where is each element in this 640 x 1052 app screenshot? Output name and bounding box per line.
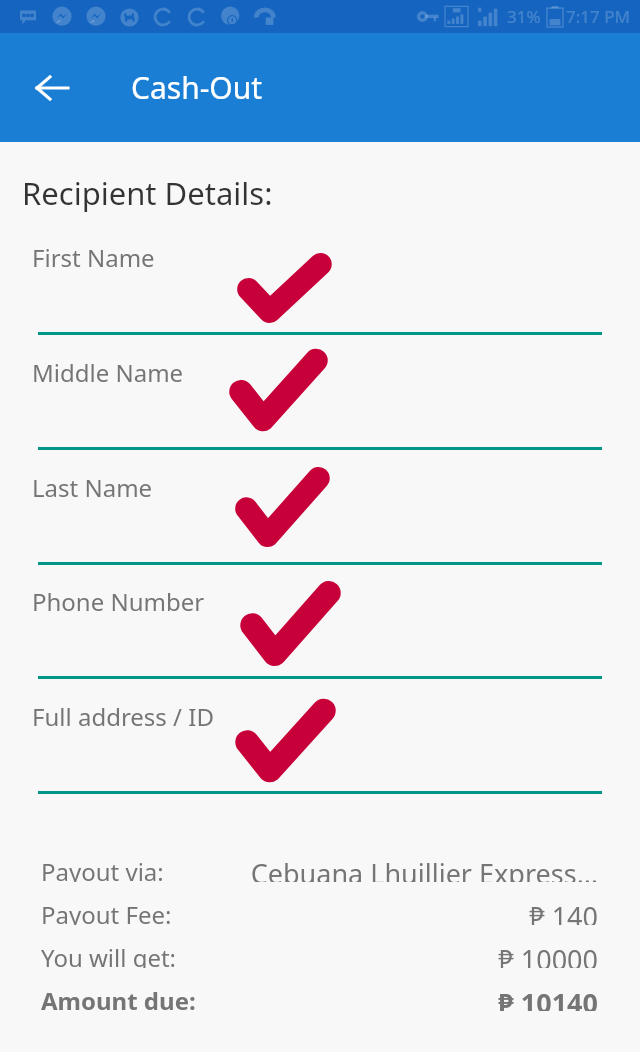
staticText: Middle Name (32, 356, 184, 389)
button[interactable]: You will get: (0, 941, 640, 968)
staticText: 7:17 PM (566, 5, 630, 28)
staticText: Payout Fee: (41, 898, 172, 925)
staticText: Cash-Out (131, 67, 263, 108)
staticText: Amount due: (41, 984, 196, 1011)
button[interactable] (0, 573, 640, 680)
staticText: ₱ 10140 (196, 984, 598, 1011)
button[interactable] (0, 344, 640, 451)
button[interactable] (0, 459, 640, 566)
staticText: ₱ 140 (172, 898, 598, 925)
staticText: Payout via: (41, 855, 164, 882)
button[interactable]: Payout Fee: (0, 898, 640, 925)
staticText: Full address / ID (32, 700, 214, 733)
staticText: Recipient Details: (22, 172, 273, 214)
staticText: First Name (32, 241, 155, 274)
staticText: Phone Number (32, 585, 205, 618)
button[interactable] (0, 229, 640, 336)
staticText: ₱ 10000 (177, 941, 598, 968)
button[interactable]: Back (22, 58, 82, 118)
staticText: Cebuana Lhuillier Express… (164, 855, 598, 882)
button[interactable] (0, 688, 640, 795)
button[interactable]: Payout via: (0, 855, 640, 882)
staticText: You will get: (41, 941, 177, 968)
button[interactable]: Amount due: (0, 984, 640, 1011)
staticText: Last Name (32, 471, 153, 504)
staticText: 31% (507, 5, 541, 28)
